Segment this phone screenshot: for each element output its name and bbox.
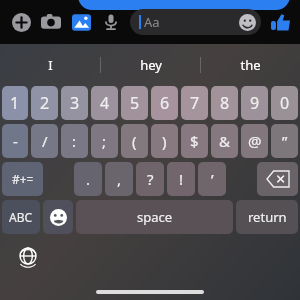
button[interactable]: 7 bbox=[181, 86, 208, 120]
button[interactable]: ( bbox=[121, 124, 148, 158]
button[interactable]: Send like bbox=[266, 8, 294, 36]
staticText: #+= bbox=[12, 171, 34, 187]
staticText: I bbox=[48, 56, 53, 74]
button[interactable]: - bbox=[2, 124, 28, 158]
staticText: 2 bbox=[40, 92, 50, 114]
staticText: $ bbox=[190, 131, 199, 151]
staticText: , bbox=[117, 169, 122, 189]
staticText: 6 bbox=[160, 92, 170, 114]
staticText: 9 bbox=[250, 92, 260, 114]
button[interactable]: 9 bbox=[241, 86, 268, 120]
staticText: 0 bbox=[280, 92, 290, 114]
button[interactable]: . bbox=[74, 162, 102, 196]
button[interactable]: & bbox=[211, 124, 238, 158]
staticText: ; bbox=[102, 131, 107, 151]
staticText: ( bbox=[132, 131, 137, 151]
button[interactable]: 0 bbox=[271, 86, 298, 120]
button[interactable]: 2 bbox=[31, 86, 58, 120]
staticText: ’ bbox=[211, 169, 214, 189]
button[interactable]: ? bbox=[136, 162, 164, 196]
staticText: hey bbox=[140, 56, 162, 74]
staticText: ) bbox=[162, 131, 167, 151]
staticText: & bbox=[219, 131, 230, 151]
button[interactable]: return bbox=[236, 200, 298, 234]
staticText: ? bbox=[147, 169, 154, 189]
button[interactable]: hey bbox=[101, 44, 200, 86]
button[interactable]: ! bbox=[167, 162, 195, 196]
staticText: Aa bbox=[144, 13, 160, 31]
button[interactable]: ABC bbox=[2, 200, 40, 234]
button[interactable]: Delete bbox=[257, 162, 298, 196]
button[interactable]: 3 bbox=[61, 86, 88, 120]
staticText: : bbox=[72, 131, 77, 151]
staticText: 1 bbox=[10, 92, 20, 114]
button[interactable]: 8 bbox=[211, 86, 238, 120]
button[interactable]: 6 bbox=[151, 86, 178, 120]
staticText: @ bbox=[248, 131, 262, 151]
button[interactable]: Stickers bbox=[239, 14, 256, 31]
button[interactable]: Emoji bbox=[43, 200, 73, 234]
staticText: space bbox=[137, 208, 173, 226]
button[interactable]: Photos bbox=[66, 7, 96, 37]
button[interactable]: space bbox=[76, 200, 233, 234]
button[interactable]: @ bbox=[241, 124, 268, 158]
staticText: the bbox=[240, 56, 261, 74]
staticText: 3 bbox=[70, 92, 80, 114]
button[interactable]: Change keyboard bbox=[16, 244, 40, 268]
button[interactable]: ) bbox=[151, 124, 178, 158]
button[interactable]: the bbox=[201, 44, 300, 86]
staticText: 8 bbox=[220, 92, 230, 114]
staticText: 7 bbox=[190, 92, 200, 114]
staticText: 4 bbox=[100, 92, 110, 114]
button[interactable]: Voice message bbox=[96, 7, 126, 37]
staticText: ABC bbox=[9, 209, 33, 225]
staticText: . bbox=[86, 169, 91, 189]
button[interactable]: Camera bbox=[36, 7, 66, 37]
staticText: - bbox=[13, 131, 18, 151]
staticText: ! bbox=[179, 169, 184, 189]
button[interactable]: 1 bbox=[2, 86, 28, 120]
button[interactable]: : bbox=[61, 124, 88, 158]
staticText: return bbox=[248, 208, 287, 226]
button[interactable]: , bbox=[105, 162, 133, 196]
button[interactable]: I bbox=[0, 44, 100, 86]
staticText: ” bbox=[282, 131, 288, 151]
button[interactable]: 5 bbox=[121, 86, 148, 120]
button[interactable]: 4 bbox=[91, 86, 118, 120]
button[interactable]: ’ bbox=[198, 162, 226, 196]
button[interactable]: More options bbox=[6, 7, 36, 37]
button[interactable]: $ bbox=[181, 124, 208, 158]
button[interactable]: #+= bbox=[2, 162, 43, 196]
button[interactable]: / bbox=[31, 124, 58, 158]
button[interactable]: Aa bbox=[130, 9, 261, 35]
button[interactable]: ” bbox=[271, 124, 298, 158]
staticText: 5 bbox=[130, 92, 140, 114]
button[interactable]: ; bbox=[91, 124, 118, 158]
staticText: / bbox=[42, 131, 48, 151]
